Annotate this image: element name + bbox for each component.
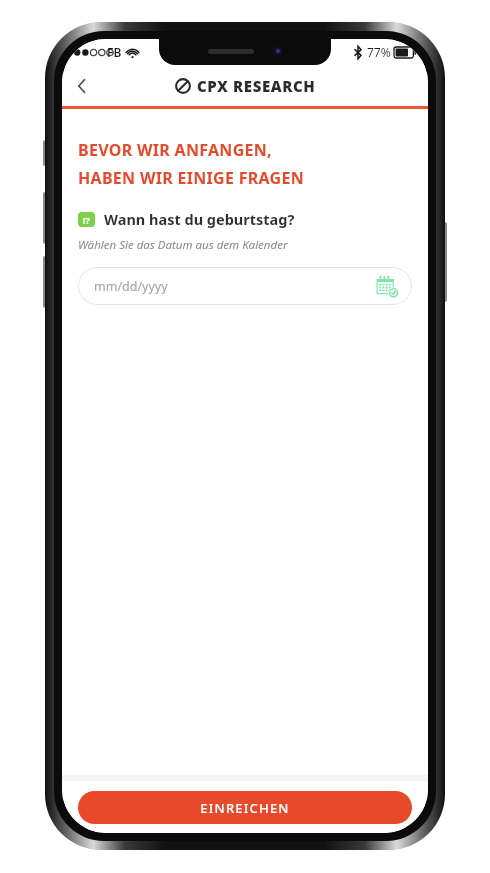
staticText: HABEN WIR EINIGE FRAGEN (78, 167, 305, 189)
staticText: !? (83, 214, 90, 226)
other: Open calendar (376, 276, 396, 296)
staticText: BEVOR WIR ANFANGEN, (78, 139, 272, 161)
button[interactable]: mm/dd/yyyy (78, 267, 412, 305)
staticText: CPX RESEARCH (197, 76, 316, 96)
button[interactable]: Back (62, 66, 102, 106)
staticText: mm/dd/yyyy (94, 278, 168, 295)
button[interactable]: EINREICHEN (78, 791, 412, 824)
staticText: Wann hast du geburtstag? (104, 209, 295, 229)
staticText: FB (107, 44, 122, 60)
staticText: EINREICHEN (200, 799, 290, 817)
staticText: Wählen Sie das Datum aus dem Kalender (78, 237, 288, 253)
staticText: 77% (367, 44, 391, 60)
